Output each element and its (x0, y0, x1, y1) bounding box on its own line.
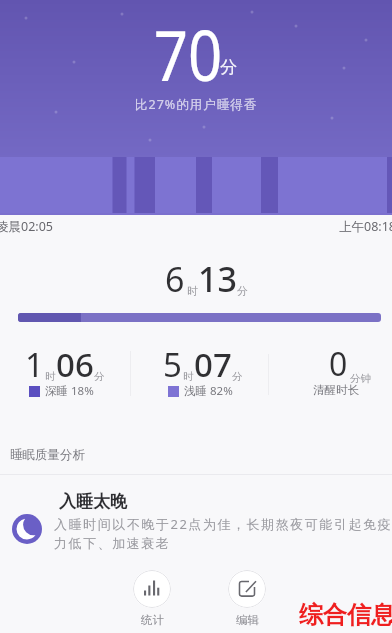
staticText: 综合信息 (299, 600, 392, 630)
staticText: 分 (237, 284, 248, 298)
staticText: 入睡时间以不晚于22点为佳，长期熬夜可能引起免疫力低下、加速衰老 (54, 515, 392, 552)
staticText: 时 (183, 370, 194, 383)
button[interactable]: Edit (217, 570, 277, 627)
staticText: 深睡 18% (45, 383, 94, 399)
staticText: 13 (198, 256, 237, 302)
staticText: 上午08:18 (339, 218, 392, 235)
staticText: 07 (194, 342, 232, 387)
button[interactable]: 入睡太晚 (0, 480, 392, 560)
staticText: 分钟 (350, 372, 371, 385)
staticText: 凌晨02:05 (0, 218, 53, 235)
staticText: 比27%的用户睡得香 (135, 96, 258, 113)
staticText: 清醒时长 (313, 383, 359, 397)
staticText: 5 (163, 342, 182, 387)
staticText: 时 (187, 284, 198, 298)
staticText: 分 (232, 370, 243, 383)
staticText: 1 (25, 342, 44, 387)
staticText: 统计 (141, 613, 164, 627)
staticText: 70 (154, 6, 223, 101)
staticText: 浅睡 82% (184, 383, 233, 399)
staticText: 分 (94, 370, 105, 383)
staticText: 时 (45, 370, 56, 383)
staticText: 编辑 (236, 613, 259, 627)
staticText: 0 (329, 342, 348, 386)
button[interactable]: Statistics (122, 570, 182, 627)
staticText: 06 (56, 342, 94, 387)
staticText: 睡眠质量分析 (10, 447, 85, 463)
staticText: 入睡太晚 (59, 491, 127, 512)
staticText: 分 (220, 57, 237, 78)
staticText: 6 (165, 256, 185, 302)
